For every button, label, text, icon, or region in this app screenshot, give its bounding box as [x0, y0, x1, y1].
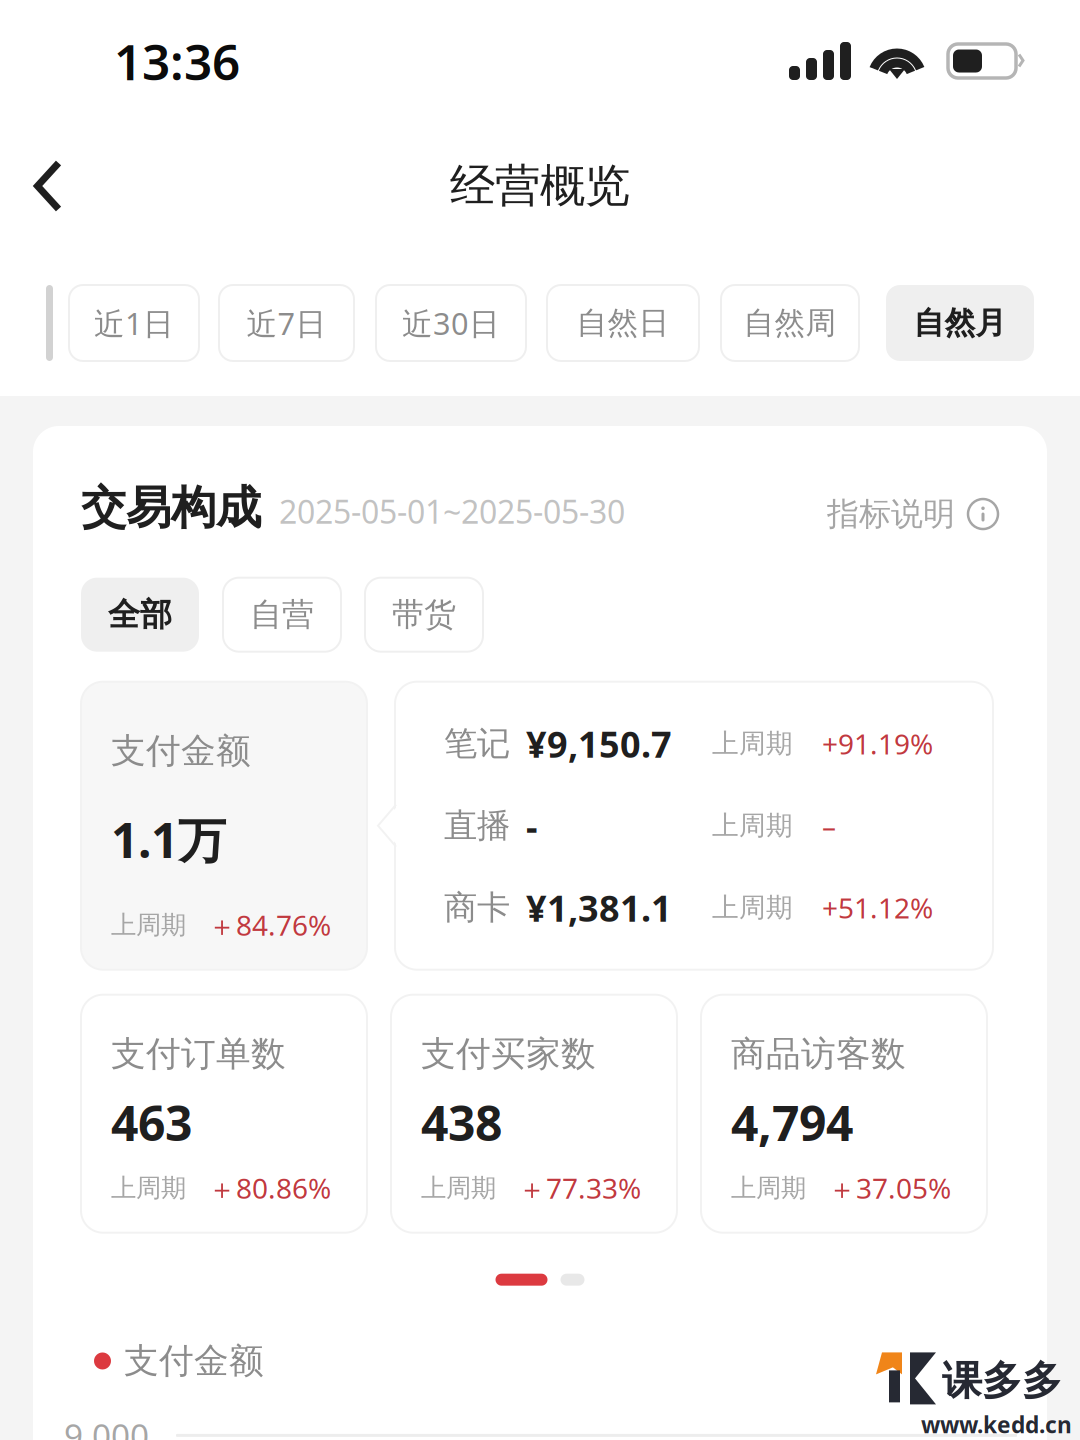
- staticText: 经营概览: [450, 158, 630, 214]
- staticText: 课多多: [942, 1356, 1062, 1405]
- staticText: 9,000: [64, 1413, 149, 1440]
- staticText: 商品访客数: [731, 1033, 906, 1075]
- staticText: –: [822, 807, 836, 844]
- button[interactable]: 自营: [223, 578, 341, 652]
- button[interactable]: 近7日: [219, 285, 354, 361]
- staticText: 全部: [108, 595, 172, 634]
- staticText: 438: [421, 1090, 502, 1154]
- button[interactable]: 支付买家数: [391, 995, 677, 1233]
- staticText: 近30日: [402, 303, 500, 343]
- staticText: 自然月: [913, 304, 1006, 342]
- staticText: 上周期: [421, 1172, 496, 1204]
- staticText: ＋80.86%: [208, 1169, 331, 1207]
- staticText: ＋84.76%: [208, 906, 331, 944]
- button[interactable]: 带货: [365, 578, 483, 652]
- staticText: ＋77.33%: [518, 1169, 641, 1207]
- button[interactable]: 指标说明: [827, 494, 999, 536]
- staticText: 4,794: [731, 1090, 853, 1154]
- staticText: 指标说明: [827, 494, 955, 534]
- staticText: ¥9,150.7: [526, 720, 672, 768]
- button[interactable]: 支付金额: [81, 682, 367, 970]
- staticText: 1.1万: [111, 807, 226, 871]
- staticText: ¥1,381.1: [526, 884, 672, 932]
- button[interactable]: 商品访客数: [701, 995, 987, 1233]
- button[interactable]: 近30日: [376, 285, 526, 361]
- staticText: 近1日: [94, 303, 174, 343]
- staticText: 13:36: [114, 28, 240, 94]
- staticText: +51.12%: [822, 889, 933, 926]
- button[interactable]: 返回: [0, 138, 96, 234]
- staticText: 近7日: [246, 303, 326, 343]
- staticText: 上周期: [712, 727, 793, 760]
- staticText: 上周期: [731, 1172, 806, 1204]
- button[interactable]: 近1日: [69, 285, 199, 361]
- button[interactable]: 全部: [81, 578, 199, 652]
- staticText: 支付金额: [111, 730, 251, 772]
- staticText: 支付买家数: [421, 1033, 596, 1075]
- staticText: 上周期: [111, 1172, 186, 1204]
- staticText: 463: [111, 1090, 192, 1154]
- button[interactable]: 自然日: [547, 285, 699, 361]
- staticText: 上周期: [712, 891, 793, 924]
- button[interactable]: 自然周: [721, 285, 859, 361]
- staticText: 自然周: [743, 304, 836, 342]
- staticText: 2025-05-01~2025-05-30: [279, 490, 625, 533]
- staticText: 支付金额: [124, 1340, 264, 1382]
- button[interactable]: 自然月: [886, 285, 1034, 361]
- staticText: 上周期: [712, 809, 793, 842]
- staticText: 笔记: [444, 723, 510, 764]
- staticText: 自营: [250, 595, 314, 634]
- staticText: 支付订单数: [111, 1033, 286, 1075]
- staticText: ＋37.05%: [828, 1169, 951, 1207]
- staticText: 交易构成: [81, 480, 261, 536]
- staticText: www.kedd.cn: [921, 1409, 1072, 1440]
- button[interactable]: 支付订单数: [81, 995, 367, 1233]
- staticText: 上周期: [111, 909, 186, 941]
- staticText: 直播: [444, 805, 510, 846]
- staticText: 商卡: [444, 887, 510, 928]
- staticText: 带货: [392, 595, 456, 634]
- staticText: -: [526, 802, 538, 850]
- staticText: +91.19%: [822, 725, 933, 762]
- staticText: 自然日: [576, 304, 669, 342]
